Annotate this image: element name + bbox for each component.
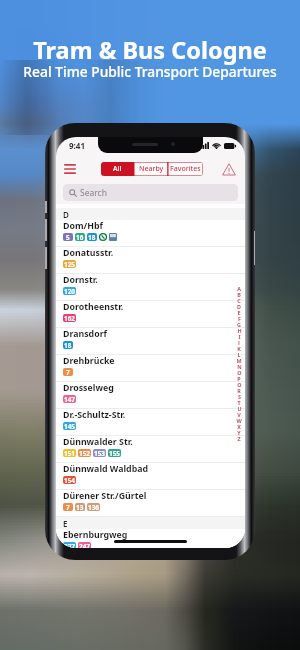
staticText: 154 — [64, 476, 75, 484]
button[interactable]: Ebernburgweg — [56, 529, 245, 548]
staticText: B — [237, 291, 241, 297]
staticText: Drehbrücke — [63, 355, 115, 367]
staticText: 151 — [64, 449, 75, 457]
staticText: V — [237, 411, 241, 417]
staticText: U — [237, 405, 242, 411]
staticText: Tram & Bus Cologne — [0, 34, 300, 66]
staticText: H — [237, 327, 242, 333]
button[interactable]: Dürener Str./Gürtel — [56, 490, 245, 517]
staticText: N — [237, 363, 242, 369]
staticText: Donatusstr. — [63, 247, 114, 259]
staticText: Real Time Public Transport Departures — [0, 62, 300, 81]
staticText: M — [236, 357, 242, 363]
staticText: Dr.-Schultz-Str. — [63, 409, 126, 421]
staticText: 153 — [94, 449, 105, 457]
staticText: 16 — [76, 233, 84, 241]
button[interactable]: Drehbrücke — [56, 355, 245, 382]
staticText: All — [113, 164, 122, 174]
staticText: F — [238, 315, 241, 321]
staticText: T — [237, 399, 241, 405]
staticText: 18 — [88, 233, 96, 241]
button[interactable]: Dorotheenstr. — [56, 301, 245, 328]
staticText: Dünnwalder Str. — [63, 436, 133, 448]
staticText: Dornstr. — [63, 274, 98, 286]
staticText: 120 — [64, 287, 75, 295]
staticText: X — [237, 423, 241, 429]
button[interactable]: Dornstr. — [56, 274, 245, 301]
staticText: L — [237, 351, 241, 357]
staticText: Dom/Hbf — [63, 220, 103, 232]
staticText: Ebernburgweg — [63, 529, 128, 541]
button[interactable]: Nearby — [134, 162, 168, 176]
staticText: 7 — [66, 368, 70, 376]
staticText: G — [237, 321, 241, 327]
staticText: E — [63, 518, 68, 529]
staticText: Y — [237, 429, 241, 435]
button[interactable]: Dom/Hbf — [56, 220, 245, 247]
button[interactable]: Dransdorf — [56, 328, 245, 355]
button[interactable]: All — [101, 162, 134, 176]
staticText: 155 — [109, 449, 120, 457]
staticText: Dünnwald Waldbad — [63, 463, 149, 475]
staticText: R — [237, 387, 241, 393]
staticText: P — [237, 375, 241, 381]
staticText: 5 — [66, 233, 70, 241]
staticText: Dorotheenstr. — [63, 301, 124, 313]
button[interactable]: Dünnwald Waldbad — [56, 463, 245, 490]
staticText: Favorites — [170, 164, 201, 174]
staticText: Nearby — [139, 164, 164, 174]
staticText: 7 — [66, 503, 70, 511]
staticText: W — [236, 417, 242, 423]
staticText: A — [237, 285, 241, 291]
button[interactable]: Search — [63, 184, 238, 201]
staticText: Q — [237, 381, 242, 387]
staticText: J — [238, 339, 240, 345]
staticText: 145 — [64, 422, 75, 430]
staticText: 227 — [64, 542, 75, 548]
button[interactable]: Menu — [60, 162, 80, 176]
staticText: 147 — [64, 395, 75, 403]
staticText: 162 — [64, 314, 75, 322]
staticText: 13 — [76, 503, 84, 511]
staticText: K — [237, 345, 241, 351]
button[interactable]: Drosselweg — [56, 382, 245, 409]
staticText: I — [238, 333, 241, 339]
staticText: O — [237, 369, 242, 375]
staticText: Dürener Str./Gürtel — [63, 490, 147, 502]
button[interactable]: Donatusstr. — [56, 247, 245, 274]
staticText: 18 — [64, 341, 72, 349]
staticText: 125 — [64, 260, 75, 268]
staticText: 247 — [79, 542, 90, 548]
staticText: Dransdorf — [63, 328, 107, 340]
button[interactable]: Service alerts — [219, 162, 239, 176]
button[interactable]: Dr.-Schultz-Str. — [56, 409, 245, 436]
staticText: D — [237, 303, 241, 309]
staticText: Drosselweg — [63, 382, 114, 394]
staticText: 9:41 — [69, 140, 85, 151]
staticText: S — [238, 393, 241, 399]
staticText: 152 — [79, 449, 90, 457]
staticText: D — [63, 209, 69, 220]
button[interactable]: Favorites — [168, 162, 203, 176]
staticText: 136 — [88, 503, 99, 511]
staticText: C — [237, 297, 241, 303]
button[interactable]: Dünnwalder Str. — [56, 436, 245, 463]
staticText: Search — [80, 187, 107, 199]
staticText: E — [237, 309, 241, 315]
staticText: Z — [237, 435, 241, 441]
